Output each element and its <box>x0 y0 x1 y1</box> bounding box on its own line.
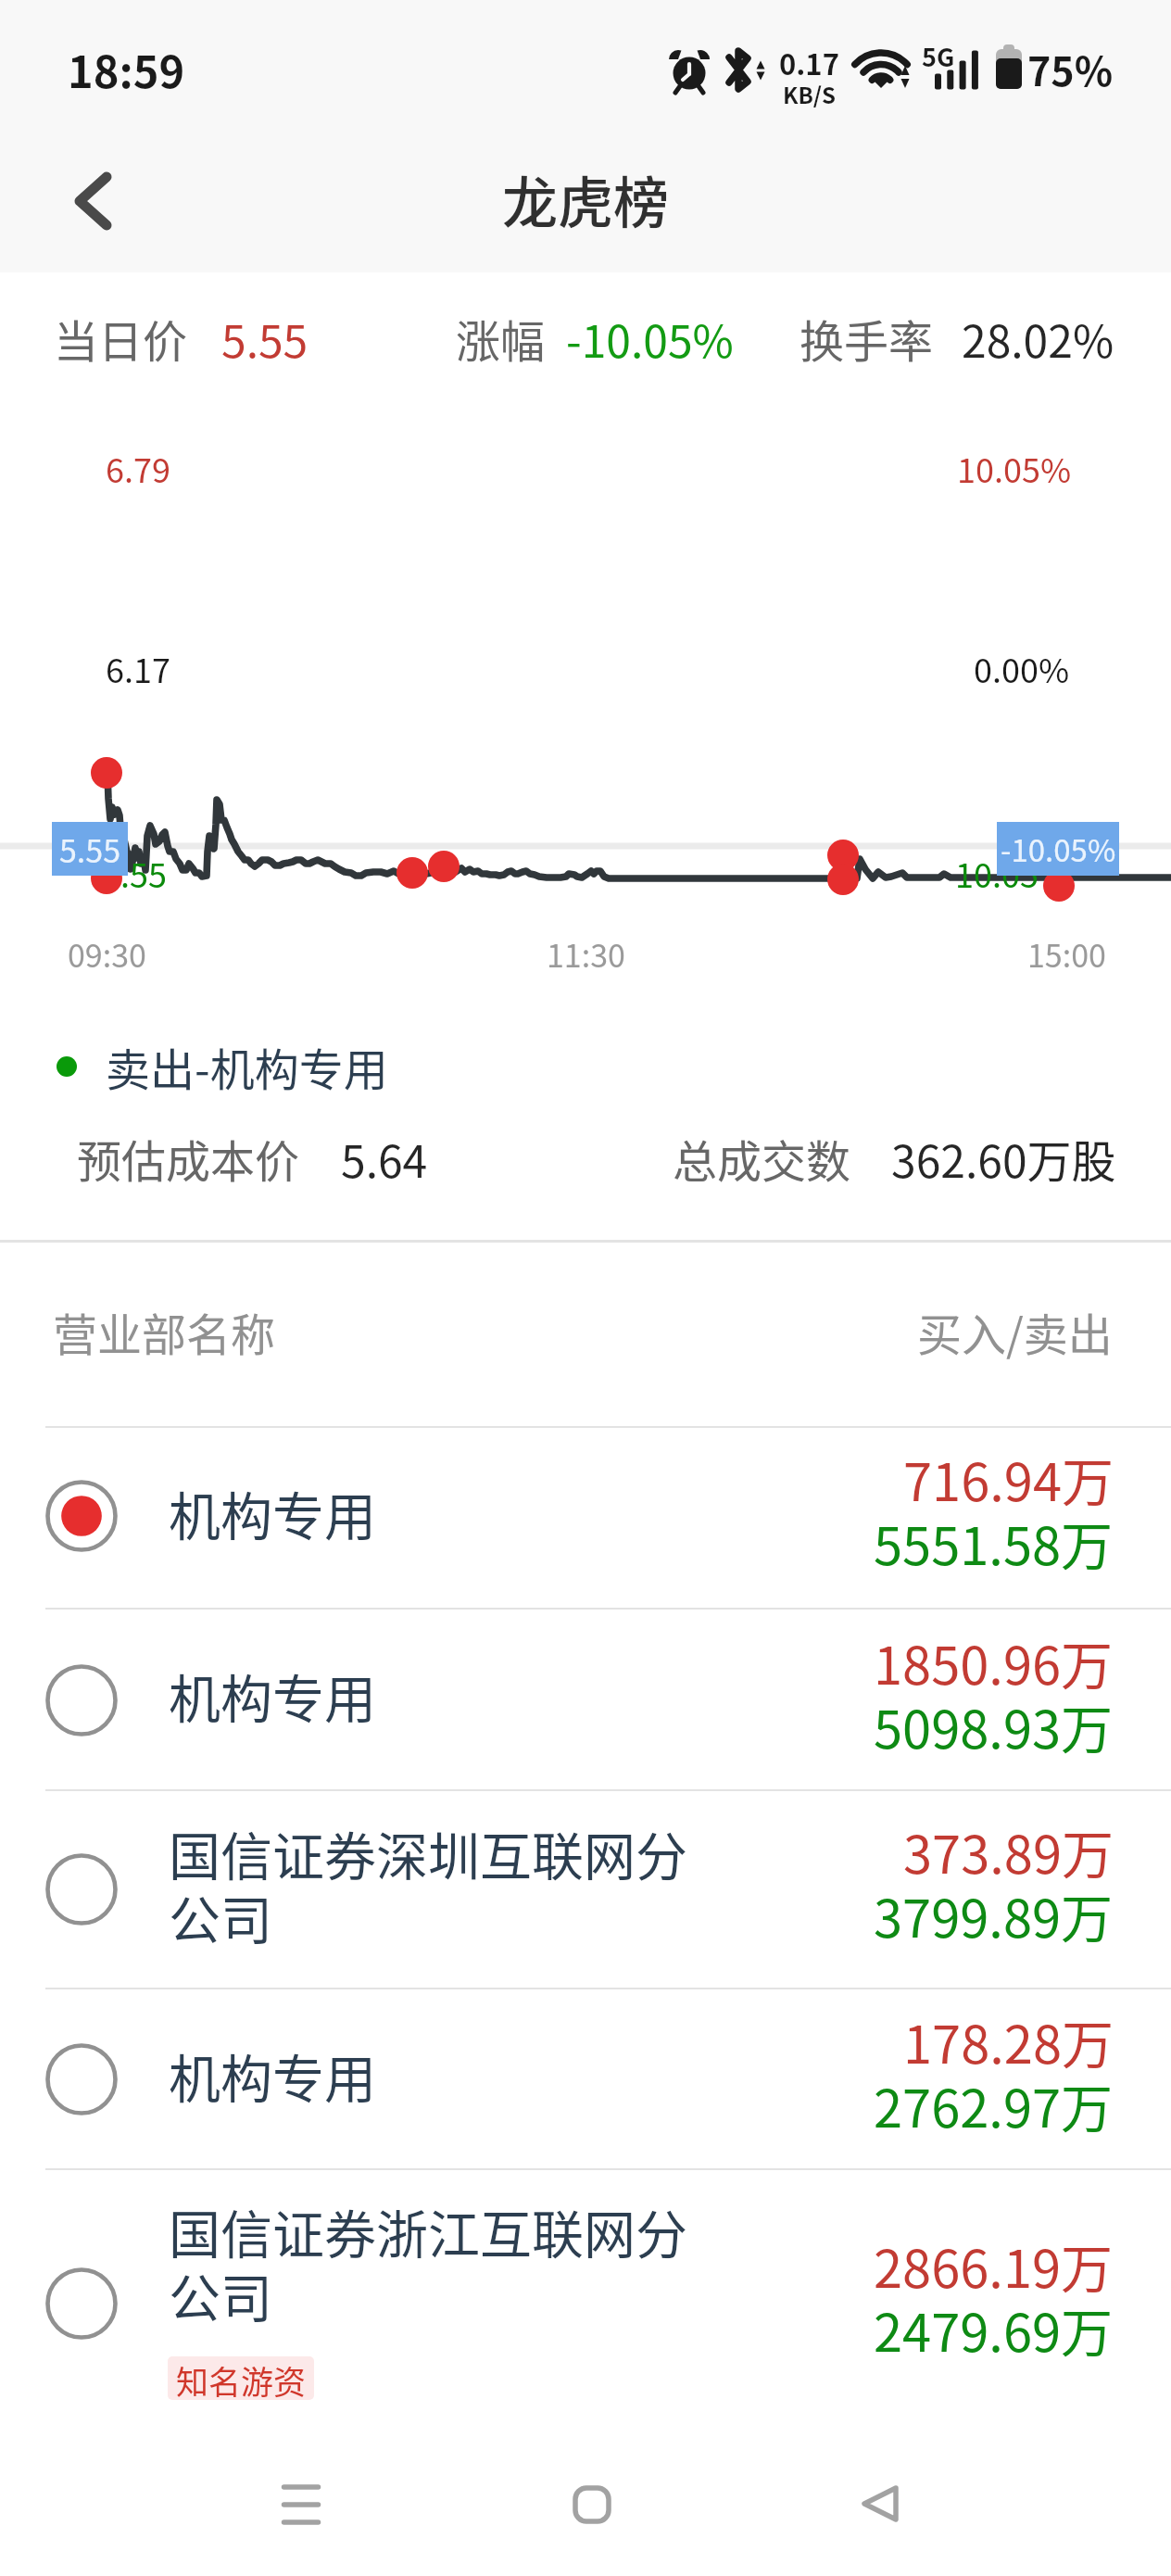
staticText: 178.28万 <box>903 2003 1114 2078</box>
staticText: 3799.89万 <box>874 1877 1114 1952</box>
staticText: 国信证券浙江互联网分公司 <box>169 2193 699 2332</box>
staticText: 机构专用 <box>169 1475 699 1550</box>
staticText: 2866.19万 <box>874 2228 1114 2303</box>
staticText: 10.05 <box>955 849 1039 897</box>
button[interactable]: Back <box>36 148 150 254</box>
staticText: 2479.69万 <box>874 2292 1114 2367</box>
staticText: 2762.97万 <box>874 2067 1114 2142</box>
staticText: 0.17 <box>779 42 839 83</box>
staticText: -10.05% <box>1001 827 1116 871</box>
button[interactable]: 国信证券浙江互联网分公司 <box>0 2170 1171 2407</box>
staticText: 362.60万股 <box>891 1126 1116 1191</box>
staticText: 15:00 <box>1027 931 1106 977</box>
staticText: 卖出-机构专用 <box>106 1034 388 1099</box>
staticText: 5.55 <box>102 849 167 897</box>
staticText: -10.05% <box>566 306 734 371</box>
staticText: 当日价 <box>54 306 188 371</box>
staticText: 国信证券深圳互联网分公司 <box>169 1815 699 1954</box>
staticText: 营业部名称 <box>53 1299 276 1364</box>
staticText: 09:30 <box>68 931 146 977</box>
staticText: 总成交数 <box>673 1126 851 1191</box>
staticText: 预估成本价 <box>77 1126 300 1191</box>
staticText: 11:30 <box>547 931 625 977</box>
staticText: 75% <box>1027 40 1114 97</box>
staticText: 机构专用 <box>169 1658 699 1733</box>
staticText: 6.79 <box>106 444 170 492</box>
staticText: 28.02% <box>962 306 1114 371</box>
staticText: 5G <box>922 38 955 74</box>
button[interactable]: 国信证券深圳互联网分公司 <box>0 1791 1171 1988</box>
staticText: 373.89万 <box>903 1813 1114 1888</box>
button[interactable]: 机构专用 <box>0 1428 1171 1608</box>
button[interactable]: 机构专用 <box>0 1989 1171 2168</box>
staticText: 换手率 <box>800 306 934 371</box>
staticText: 知名游资 <box>176 2356 307 2400</box>
staticText: 0.00% <box>974 644 1070 692</box>
staticText: 机构专用 <box>169 2038 699 2113</box>
button[interactable]: 机构专用 <box>0 1610 1171 1789</box>
staticText: 5551.58万 <box>874 1505 1114 1580</box>
staticText: 涨幅 <box>456 306 546 371</box>
staticText: 716.94万 <box>903 1441 1114 1516</box>
button[interactable]: Menu <box>246 2460 357 2549</box>
staticText: 10.05% <box>957 444 1072 492</box>
staticText: 5.64 <box>341 1126 428 1191</box>
button[interactable]: Back <box>825 2459 936 2548</box>
staticText: 买入/卖出 <box>917 1299 1113 1364</box>
staticText: 5098.93万 <box>874 1688 1114 1763</box>
staticText: 1850.96万 <box>874 1624 1114 1699</box>
staticText: 龙虎榜 <box>502 158 669 239</box>
staticText: 18:59 <box>68 37 185 100</box>
staticText: 5.55 <box>59 827 121 872</box>
staticText: KB/S <box>783 78 837 110</box>
staticText: 6.17 <box>106 644 170 692</box>
staticText: 5.55 <box>221 306 308 371</box>
button[interactable]: Home <box>536 2460 648 2549</box>
